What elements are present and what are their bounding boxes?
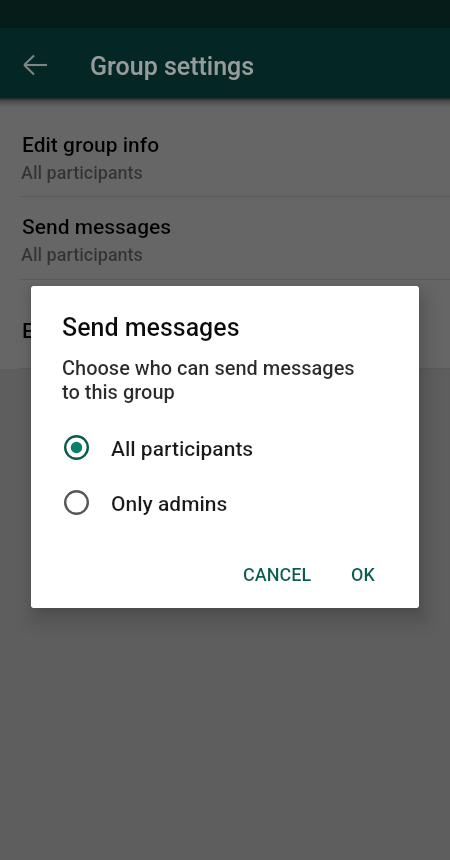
staticText: Edit group settings	[22, 319, 199, 344]
button[interactable]: Edit group settings	[0, 280, 450, 368]
staticText: Group settings	[90, 52, 255, 81]
staticText: Send messages	[62, 313, 240, 342]
staticText: All participants	[21, 162, 143, 183]
staticText: Only admins	[111, 492, 228, 517]
staticText: All participants	[21, 244, 143, 265]
staticText: Send messages	[22, 215, 172, 240]
staticText: CANCEL	[243, 564, 312, 585]
staticText: Edit group info	[22, 133, 160, 158]
button[interactable]: Back	[0, 28, 70, 98]
button[interactable]: Only admins	[31, 475, 419, 530]
button[interactable]: CANCEL	[227, 554, 328, 595]
staticText: Choose who can send messages to this gro…	[62, 356, 355, 404]
staticText: All participants	[111, 437, 254, 462]
button[interactable]: OK	[335, 554, 391, 595]
button[interactable]: Send messages	[0, 197, 450, 279]
button[interactable]: All participants	[31, 420, 419, 475]
staticText: OK	[351, 564, 375, 585]
button[interactable]: Edit group info	[0, 113, 450, 196]
